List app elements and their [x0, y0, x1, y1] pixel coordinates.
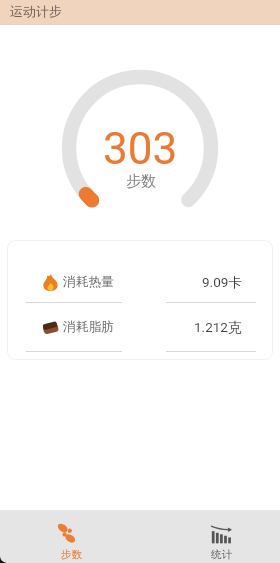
- staticText: 步数: [126, 172, 156, 191]
- staticText: 消耗脂肪: [63, 319, 114, 335]
- staticText: 1.212克: [194, 319, 242, 336]
- button[interactable]: 消耗热量: [42, 272, 242, 292]
- staticText: 统计: [211, 548, 232, 561]
- button[interactable]: 消耗脂肪: [42, 317, 242, 337]
- staticText: 消耗热量: [63, 274, 114, 290]
- staticText: 303: [103, 123, 178, 175]
- staticText: 运动计步: [10, 3, 62, 19]
- button[interactable]: 统计: [140, 510, 280, 563]
- staticText: 步数: [61, 548, 82, 561]
- staticText: 9.09卡: [202, 274, 242, 291]
- button[interactable]: 步数: [0, 510, 140, 563]
